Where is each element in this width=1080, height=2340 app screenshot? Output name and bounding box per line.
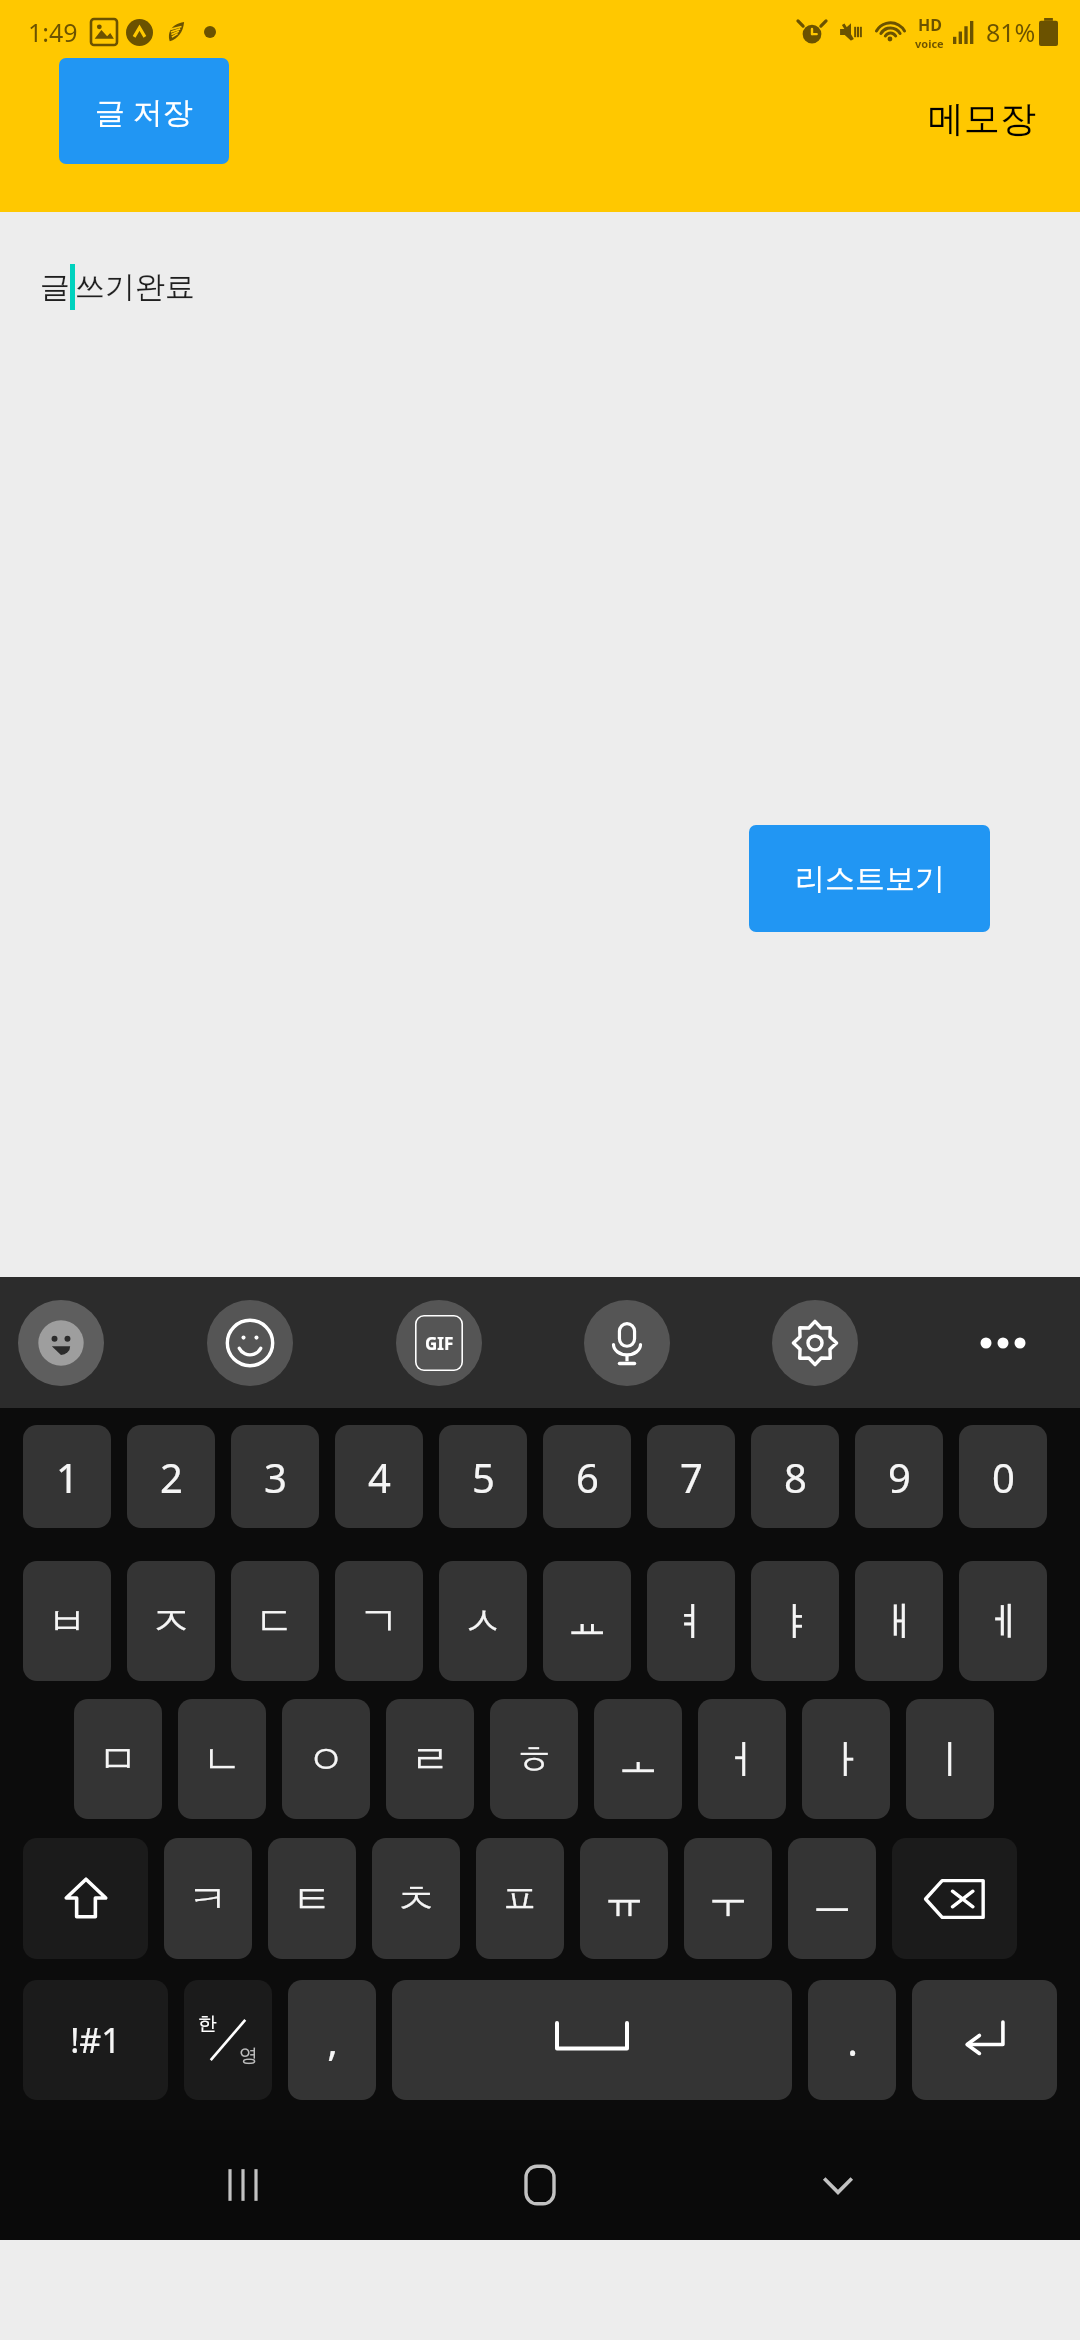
button[interactable]: Backspace bbox=[892, 1838, 1017, 1959]
staticText: !#1 bbox=[70, 2017, 121, 2063]
staticText: ㅈ bbox=[151, 1596, 191, 1646]
staticText: ㅠ bbox=[604, 1874, 644, 1924]
staticText: ㅁ bbox=[98, 1734, 138, 1784]
button[interactable]: Enter bbox=[912, 1980, 1057, 2100]
button[interactable]: More options bbox=[960, 1300, 1046, 1386]
button[interactable]: 5 bbox=[439, 1425, 527, 1528]
staticText: ㅓ bbox=[722, 1734, 762, 1784]
button[interactable]: !#1 bbox=[23, 1980, 168, 2100]
staticText: ㅜ bbox=[708, 1874, 748, 1924]
button[interactable]: 8 bbox=[751, 1425, 839, 1528]
button[interactable]: Keyboard settings bbox=[772, 1300, 858, 1386]
button[interactable]: GIF bbox=[396, 1300, 482, 1386]
button[interactable]: ㅎ bbox=[490, 1699, 578, 1819]
button[interactable]: ㅣ bbox=[906, 1699, 994, 1819]
staticText: 글 bbox=[40, 268, 70, 306]
button[interactable]: ㄹ bbox=[386, 1699, 474, 1819]
button[interactable]: Space bbox=[392, 1980, 792, 2100]
button[interactable]: ㅡ bbox=[788, 1838, 876, 1959]
button[interactable]: ㄴ bbox=[178, 1699, 266, 1819]
staticText: 5 bbox=[472, 1450, 495, 1504]
button[interactable]: 7 bbox=[647, 1425, 735, 1528]
button[interactable]: ㄱ bbox=[335, 1561, 423, 1681]
button[interactable]: ㅂ bbox=[23, 1561, 111, 1681]
staticText: 1 bbox=[56, 1450, 79, 1504]
button[interactable]: Korean English toggle bbox=[184, 1980, 272, 2100]
button[interactable]: ㅅ bbox=[439, 1561, 527, 1681]
staticText: ㅐ bbox=[879, 1596, 919, 1646]
staticText: . bbox=[847, 2013, 858, 2067]
button[interactable]: 2 bbox=[127, 1425, 215, 1528]
staticText: ㅂ bbox=[47, 1596, 87, 1646]
staticText: ㅑ bbox=[775, 1596, 815, 1646]
button[interactable]: Recents bbox=[188, 2130, 298, 2240]
staticText: 글 저장 bbox=[95, 91, 193, 132]
staticText: voice bbox=[915, 36, 944, 51]
staticText: ㅇ bbox=[306, 1734, 346, 1784]
staticText: ㅔ bbox=[983, 1596, 1023, 1646]
staticText: 3 bbox=[264, 1450, 287, 1504]
button[interactable]: Voice input bbox=[584, 1300, 670, 1386]
staticText: ㅛ bbox=[567, 1596, 607, 1646]
button[interactable]: ㅑ bbox=[751, 1561, 839, 1681]
button[interactable]: Home bbox=[485, 2130, 595, 2240]
staticText: ㅏ bbox=[826, 1734, 866, 1784]
staticText: 81% bbox=[986, 15, 1036, 49]
button[interactable]: . bbox=[808, 1980, 896, 2100]
button[interactable]: 글 저장 bbox=[59, 58, 229, 164]
button[interactable]: 리스트보기 bbox=[749, 825, 990, 932]
staticText: ㅕ bbox=[671, 1596, 711, 1646]
staticText: ㄷ bbox=[255, 1596, 295, 1646]
staticText: 9 bbox=[888, 1450, 911, 1504]
button[interactable]: ㅁ bbox=[74, 1699, 162, 1819]
staticText: 영 bbox=[239, 2044, 258, 2068]
staticText: 8 bbox=[784, 1450, 807, 1504]
staticText: ㅣ bbox=[930, 1734, 970, 1784]
button[interactable]: ㅗ bbox=[594, 1699, 682, 1819]
button[interactable]: 6 bbox=[543, 1425, 631, 1528]
button[interactable]: ㅌ bbox=[268, 1838, 356, 1959]
button[interactable]: 1 bbox=[23, 1425, 111, 1528]
button[interactable]: ㅋ bbox=[164, 1838, 252, 1959]
button[interactable]: ㅜ bbox=[684, 1838, 772, 1959]
button[interactable]: ㅔ bbox=[959, 1561, 1047, 1681]
button[interactable]: 3 bbox=[231, 1425, 319, 1528]
button[interactable]: ㅓ bbox=[698, 1699, 786, 1819]
staticText: ㅊ bbox=[396, 1874, 436, 1924]
button[interactable]: Hide keyboard bbox=[783, 2130, 893, 2240]
staticText: 한 bbox=[198, 2012, 217, 2036]
button[interactable]: 4 bbox=[335, 1425, 423, 1528]
staticText: ㅅ bbox=[463, 1596, 503, 1646]
button[interactable]: Stickers bbox=[207, 1300, 293, 1386]
staticText: , bbox=[327, 2013, 338, 2067]
button[interactable]: ㄷ bbox=[231, 1561, 319, 1681]
button[interactable]: ㅏ bbox=[802, 1699, 890, 1819]
button[interactable]: , bbox=[288, 1980, 376, 2100]
button[interactable]: ㅕ bbox=[647, 1561, 735, 1681]
staticText: ㅡ bbox=[812, 1874, 852, 1924]
staticText: ㅎ bbox=[514, 1734, 554, 1784]
button[interactable]: ㅍ bbox=[476, 1838, 564, 1959]
button[interactable]: ㅇ bbox=[282, 1699, 370, 1819]
staticText: HD bbox=[918, 14, 942, 36]
button[interactable]: ㅐ bbox=[855, 1561, 943, 1681]
staticText: 쓰기완료 bbox=[75, 268, 195, 306]
staticText: ㅌ bbox=[292, 1874, 332, 1924]
staticText: ㅋ bbox=[188, 1874, 228, 1924]
staticText: GIF bbox=[425, 1332, 454, 1355]
button[interactable]: ㅛ bbox=[543, 1561, 631, 1681]
staticText: 메모장 bbox=[928, 96, 1036, 141]
staticText: 2 bbox=[160, 1450, 183, 1504]
staticText: ㄱ bbox=[359, 1596, 399, 1646]
button[interactable]: Shift bbox=[23, 1838, 148, 1959]
button[interactable]: ㅊ bbox=[372, 1838, 460, 1959]
button[interactable]: ㅠ bbox=[580, 1838, 668, 1959]
staticText: 리스트보기 bbox=[795, 860, 945, 898]
staticText: 1:49 bbox=[28, 15, 78, 49]
button[interactable]: ㅈ bbox=[127, 1561, 215, 1681]
button[interactable]: Emoji keyboard bbox=[18, 1300, 104, 1386]
button[interactable]: 9 bbox=[855, 1425, 943, 1528]
staticText: 4 bbox=[368, 1450, 391, 1504]
button[interactable]: 0 bbox=[959, 1425, 1047, 1528]
staticText: 6 bbox=[576, 1450, 599, 1504]
